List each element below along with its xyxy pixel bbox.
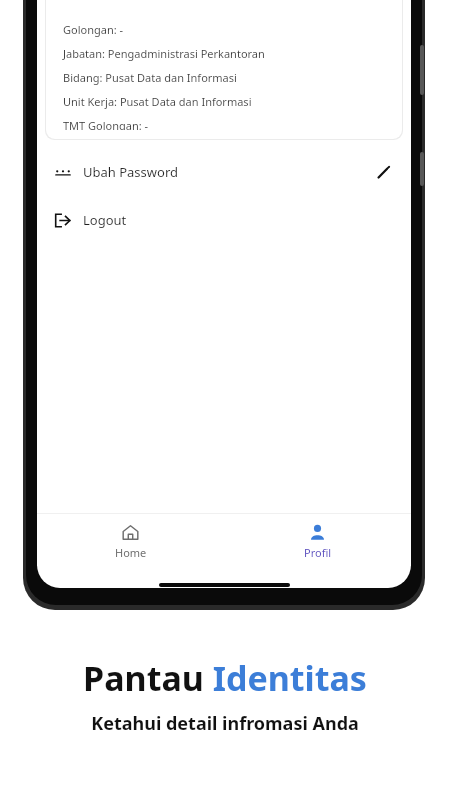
button[interactable]: Home xyxy=(37,514,224,566)
staticText: Jabatan: Pengadministrasi Perkantoran xyxy=(63,46,265,61)
staticText: Home xyxy=(115,545,147,560)
staticText: Ubah Password xyxy=(83,163,179,181)
button[interactable]: Profil xyxy=(224,514,411,566)
button[interactable]: Edit password xyxy=(372,161,394,183)
staticText: Bidang: Pusat Data dan Informasi xyxy=(63,70,237,85)
staticText: Pantau Identitas xyxy=(83,655,367,701)
button[interactable]: Ubah Password xyxy=(37,150,411,194)
staticText: Golongan: - xyxy=(63,22,124,37)
staticText: Logout xyxy=(83,211,127,229)
staticText: Profil xyxy=(304,545,332,560)
staticText: Ketahui detail infromasi Anda xyxy=(91,711,359,736)
staticText: TMT Golongan: - xyxy=(63,118,149,130)
button[interactable]: Logout xyxy=(37,198,411,242)
staticText: Unit Kerja: Pusat Data dan Informasi xyxy=(63,94,252,109)
